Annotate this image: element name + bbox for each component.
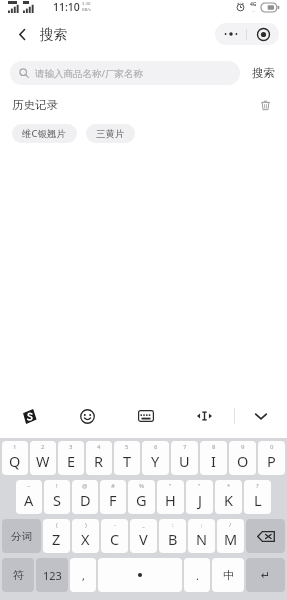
staticText: 2 <box>41 443 45 451</box>
button[interactable]: * <box>215 480 242 514</box>
button[interactable]: 维C银翘片 <box>12 124 77 143</box>
staticText: M <box>224 529 238 549</box>
staticText: B <box>168 529 178 549</box>
button[interactable]: Hide keyboard <box>235 394 287 438</box>
button[interactable]: - <box>101 519 128 553</box>
button[interactable]: _ <box>130 519 157 553</box>
staticText: V <box>139 529 148 549</box>
button[interactable]: 3 <box>58 441 84 475</box>
staticText: ” <box>198 482 201 490</box>
button[interactable]: More options <box>215 23 246 45</box>
staticText: U <box>179 451 190 471</box>
button[interactable]: 5 <box>114 441 140 475</box>
button[interactable]: Back <box>10 22 34 46</box>
button[interactable]: 分词 <box>2 519 41 553</box>
staticText: F <box>109 490 117 510</box>
staticText: T <box>123 451 132 471</box>
button[interactable]: 搜索 <box>250 63 277 83</box>
button[interactable]: 123 <box>36 558 68 592</box>
button[interactable]: @ <box>72 480 98 514</box>
button[interactable] <box>98 558 182 592</box>
button[interactable]: . <box>184 558 210 592</box>
staticText: R <box>94 451 104 471</box>
staticText: A <box>24 490 34 510</box>
staticText: Z <box>52 529 61 549</box>
staticText: K <box>224 490 233 510</box>
button[interactable]: ? <box>244 480 271 514</box>
staticText: 符 <box>13 568 24 582</box>
staticText: 7 <box>183 443 187 451</box>
button[interactable]: : <box>159 519 186 553</box>
button[interactable]: 符 <box>2 558 34 592</box>
staticText: O <box>237 451 249 471</box>
button[interactable]: “ <box>157 480 184 514</box>
staticText: % <box>139 482 144 490</box>
staticText: ! <box>56 482 58 490</box>
button[interactable]: Sogou input <box>0 394 58 438</box>
button[interactable]: Move cursor <box>175 394 234 438</box>
button[interactable]: Emoji <box>58 394 116 438</box>
staticText: “ <box>169 482 172 490</box>
staticText: W <box>36 451 50 471</box>
button[interactable]: 6 <box>142 441 169 475</box>
button[interactable]: Clear history <box>255 95 275 115</box>
staticText: - <box>114 521 116 529</box>
button[interactable]: # <box>100 480 126 514</box>
staticText: 搜索 <box>252 66 275 80</box>
staticText: ~ <box>27 482 31 490</box>
button[interactable]: ; <box>188 519 215 553</box>
staticText: # <box>111 482 115 490</box>
button[interactable]: Keyboard layout <box>116 394 175 438</box>
staticText: 4G <box>250 1 257 8</box>
staticText: KB/s <box>82 7 91 13</box>
button[interactable]: Close <box>247 23 279 45</box>
staticText: ; <box>201 521 203 529</box>
button[interactable]: ) <box>72 519 99 553</box>
staticText: N <box>196 529 208 549</box>
staticText: . <box>196 568 199 583</box>
staticText: 123 <box>43 568 62 583</box>
staticText: H <box>165 490 176 510</box>
button[interactable]: % <box>128 480 155 514</box>
button[interactable]: 7 <box>171 441 198 475</box>
button[interactable]: 请输入商品名称/厂家名称 <box>10 61 240 85</box>
staticText: 8 <box>212 443 216 451</box>
staticText: X <box>81 529 90 549</box>
button[interactable]: ! <box>44 480 70 514</box>
button[interactable]: Backspace <box>246 519 285 553</box>
staticText: 中 <box>223 568 234 582</box>
button[interactable]: 8 <box>200 441 227 475</box>
button[interactable]: ~ <box>16 480 42 514</box>
button[interactable]: Language <box>212 558 244 592</box>
staticText: 4 <box>97 443 101 451</box>
staticText: : <box>172 521 174 529</box>
button[interactable]: 9 <box>229 441 256 475</box>
staticText: 历史记录 <box>12 98 58 112</box>
staticText: 1 <box>13 443 17 451</box>
button[interactable]: 1 <box>2 441 28 475</box>
button[interactable]: / <box>217 519 244 553</box>
button[interactable]: 2 <box>30 441 56 475</box>
button[interactable]: 三黄片 <box>86 124 135 143</box>
staticText: 三黄片 <box>96 128 125 140</box>
staticText: 0 <box>270 443 274 451</box>
staticText: I <box>211 451 216 471</box>
staticText: Q <box>9 451 21 471</box>
staticText: / <box>229 521 232 529</box>
button[interactable]: 4 <box>86 441 112 475</box>
staticText: ( <box>56 521 58 529</box>
button[interactable]: ” <box>186 480 213 514</box>
button[interactable]: ( <box>43 519 70 553</box>
staticText: 11:10 <box>53 0 80 14</box>
button[interactable]: , <box>70 558 96 592</box>
button[interactable]: ↵ <box>246 558 285 592</box>
staticText: 3.30 <box>82 1 91 7</box>
staticText: @ <box>82 482 88 490</box>
staticText: 6 <box>154 443 158 451</box>
staticText: * <box>227 482 231 490</box>
staticText: 维C银翘片 <box>22 127 67 140</box>
staticText: … <box>252 8 256 13</box>
staticText: , <box>82 568 85 583</box>
staticText: ↵ <box>261 569 271 582</box>
button[interactable]: 0 <box>258 441 285 475</box>
